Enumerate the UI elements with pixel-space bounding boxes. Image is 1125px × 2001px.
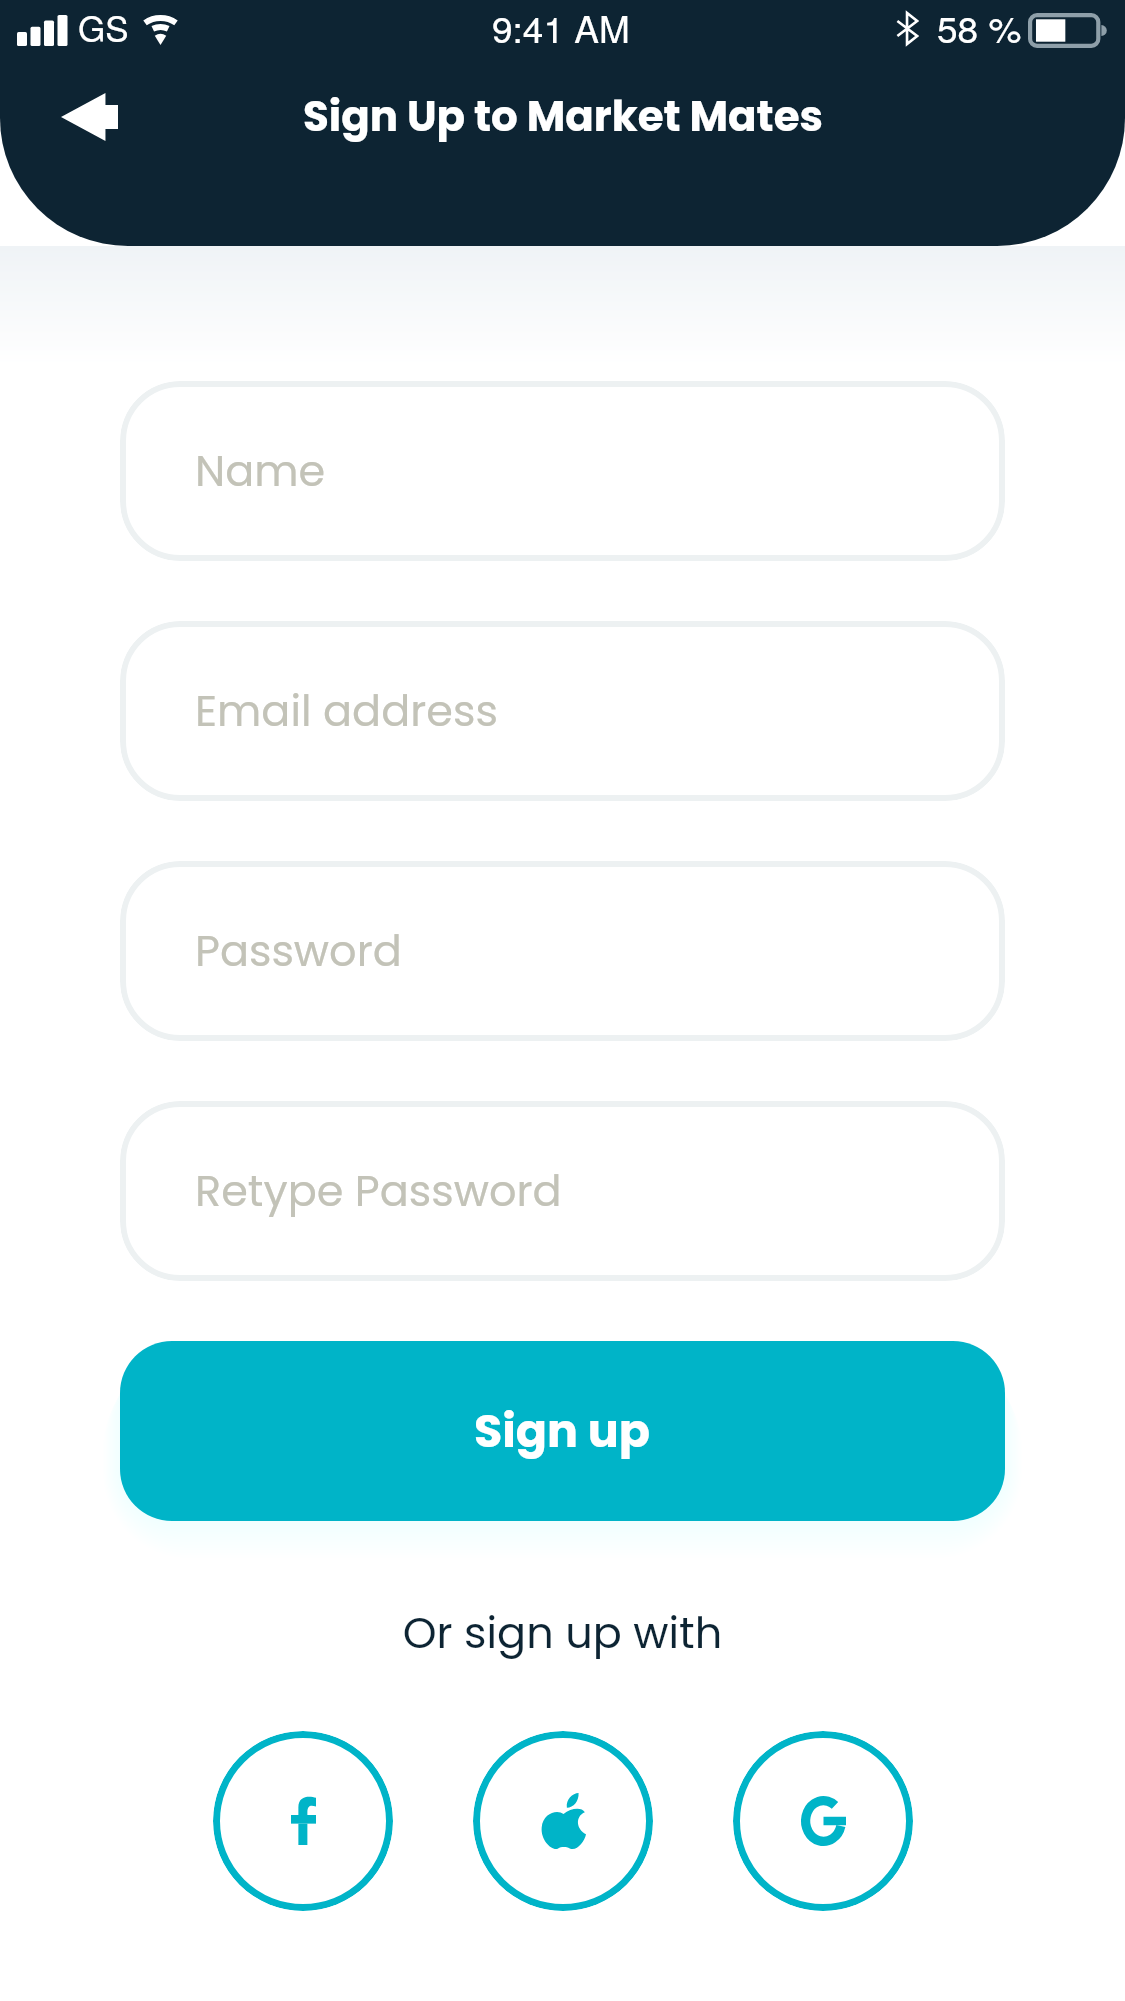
staticText: 58 % bbox=[937, 1, 1022, 54]
button[interactable]: Sign up with Google bbox=[733, 1731, 913, 1911]
staticText: Retype Password bbox=[195, 1161, 562, 1221]
staticText: 9:41 AM bbox=[492, 1, 630, 54]
button[interactable]: Sign up with Apple bbox=[473, 1731, 653, 1911]
staticText: Sign Up to Market Mates bbox=[303, 87, 823, 146]
staticText: GS bbox=[78, 2, 129, 52]
button[interactable]: Retype Password bbox=[120, 1101, 1005, 1281]
staticText: Email address bbox=[195, 681, 498, 741]
button[interactable]: Password bbox=[120, 861, 1005, 1041]
staticText: Name bbox=[195, 441, 326, 501]
button[interactable]: Name bbox=[120, 381, 1005, 561]
button[interactable]: Sign up with Facebook bbox=[213, 1731, 393, 1911]
staticText: Sign up bbox=[474, 1399, 651, 1463]
button[interactable]: Email address bbox=[120, 621, 1005, 801]
staticText: Password bbox=[195, 921, 402, 981]
button[interactable]: Back bbox=[41, 77, 137, 157]
button[interactable]: Sign up bbox=[120, 1341, 1005, 1521]
staticText: Or sign up with bbox=[0, 1603, 1125, 1663]
